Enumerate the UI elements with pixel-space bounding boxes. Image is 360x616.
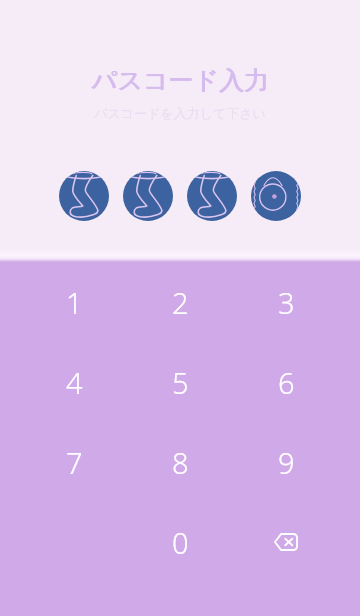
staticText: パスコード入力 — [91, 65, 269, 96]
staticText: 6 — [278, 363, 295, 402]
button[interactable]: 1 — [35, 263, 113, 341]
staticText: 5 — [172, 363, 189, 402]
staticText: 7 — [66, 443, 83, 482]
button[interactable]: 3 — [247, 263, 325, 341]
button[interactable]: 2 — [141, 263, 219, 341]
button[interactable]: Backspace — [247, 503, 325, 581]
button[interactable]: 8 — [141, 423, 219, 501]
button[interactable]: 0 — [141, 503, 219, 581]
staticText: 8 — [172, 443, 189, 482]
staticText: 9 — [278, 443, 295, 482]
staticText: 4 — [66, 363, 83, 402]
button[interactable]: 6 — [247, 343, 325, 421]
button[interactable]: 4 — [35, 343, 113, 421]
staticText: 3 — [278, 283, 295, 322]
staticText: 1 — [66, 283, 83, 322]
button[interactable]: 9 — [247, 423, 325, 501]
button[interactable]: 7 — [35, 423, 113, 501]
staticText: 2 — [172, 283, 189, 322]
button[interactable]: 5 — [141, 343, 219, 421]
staticText: 0 — [172, 523, 189, 562]
staticText: パスコード入力 — [92, 65, 270, 96]
staticText: パスコードを入力して下さい — [94, 105, 266, 121]
